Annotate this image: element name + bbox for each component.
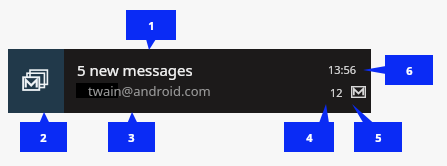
- staticText: 4: [306, 130, 313, 145]
- staticText: 6: [406, 63, 413, 78]
- staticText: 5: [375, 130, 382, 145]
- button[interactable]: 4: [284, 122, 334, 152]
- staticText: 12: [330, 85, 343, 100]
- button[interactable]: 3: [108, 122, 155, 152]
- button[interactable]: Gmail app icon: [8, 49, 371, 113]
- other: Gmail small icon: [350, 84, 366, 100]
- staticText: 13:56: [328, 62, 357, 77]
- button[interactable]: 6: [385, 55, 433, 85]
- button[interactable]: 5: [354, 122, 402, 152]
- staticText: 3: [128, 130, 135, 145]
- staticText: twain@android.com: [88, 82, 211, 100]
- staticText: 5 new messages: [77, 60, 193, 80]
- button[interactable]: 2: [20, 122, 67, 152]
- staticText: 2: [40, 130, 47, 145]
- staticText: 1: [148, 18, 155, 33]
- button[interactable]: Gmail app icon: [8, 49, 64, 113]
- button[interactable]: 1: [126, 10, 176, 40]
